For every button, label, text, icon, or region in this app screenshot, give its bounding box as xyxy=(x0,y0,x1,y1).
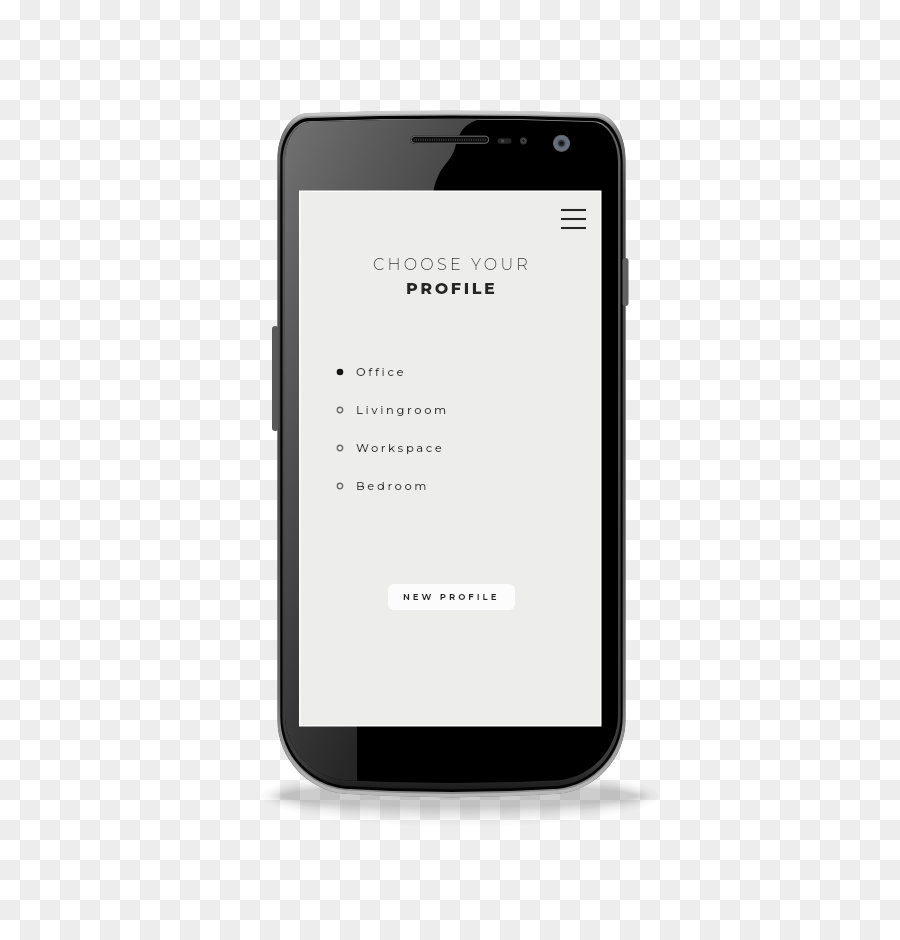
staticText: Workspace xyxy=(356,441,445,455)
button[interactable]: NEW PROFILE xyxy=(388,584,515,610)
staticText: Office xyxy=(356,365,407,379)
button[interactable]: Office xyxy=(332,353,522,391)
button[interactable]: Menu xyxy=(549,195,593,231)
button[interactable]: Bedroom xyxy=(332,467,522,505)
staticText: Livingroom xyxy=(356,403,449,417)
staticText: CHOOSE YOUR xyxy=(373,255,532,275)
button[interactable]: Livingroom xyxy=(332,391,522,429)
staticText: NEW PROFILE xyxy=(403,592,500,602)
staticText: Bedroom xyxy=(356,479,430,493)
button[interactable]: Workspace xyxy=(332,429,522,467)
staticText: PROFILE xyxy=(406,279,498,299)
